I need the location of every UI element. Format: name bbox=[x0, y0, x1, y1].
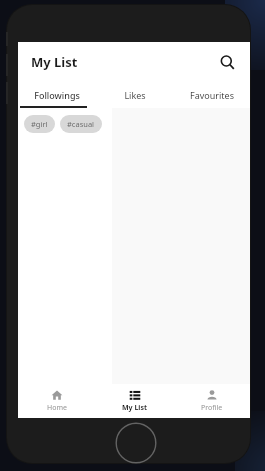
staticText: #girl bbox=[31, 119, 48, 129]
button[interactable]: #casual bbox=[60, 115, 102, 133]
staticText: Followings bbox=[34, 89, 80, 101]
staticText: Profile bbox=[201, 403, 223, 413]
staticText: My List bbox=[31, 53, 78, 71]
button[interactable]: Home bbox=[18, 384, 96, 418]
staticText: Home bbox=[47, 403, 67, 413]
staticText: Likes bbox=[124, 89, 146, 101]
button[interactable]: Search bbox=[215, 50, 239, 74]
staticText: #casual bbox=[67, 119, 95, 129]
button[interactable]: Likes bbox=[96, 82, 173, 108]
button[interactable]: #girl bbox=[24, 115, 55, 133]
staticText: My List bbox=[122, 403, 147, 413]
button[interactable]: Favourites bbox=[173, 82, 250, 108]
button[interactable]: Profile bbox=[173, 384, 250, 418]
staticText: Favourites bbox=[190, 89, 234, 101]
button[interactable]: My List bbox=[96, 384, 173, 418]
button[interactable]: Followings bbox=[18, 82, 96, 108]
